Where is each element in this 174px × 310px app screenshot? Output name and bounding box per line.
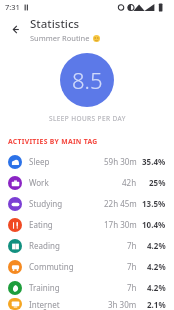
staticText: Studying <box>29 198 63 209</box>
staticText: 8.5 <box>72 65 103 95</box>
button[interactable]: Studying <box>0 193 174 214</box>
staticText: SLEEP HOURS PER DAY <box>49 114 126 123</box>
staticText: 2.1% <box>147 299 166 310</box>
button[interactable]: Commuting <box>0 256 174 277</box>
button[interactable]: Back <box>0 14 30 44</box>
staticText: Work <box>29 177 49 188</box>
staticText: Training <box>29 282 60 293</box>
button[interactable]: Reading <box>0 235 174 256</box>
staticText: 7h <box>127 282 137 293</box>
staticText: Sleep <box>29 156 50 167</box>
staticText: 59h 30m <box>104 156 137 167</box>
staticText: 3h 30m <box>108 299 137 310</box>
button[interactable]: 8.5 <box>60 53 114 107</box>
staticText: 4.2% <box>147 282 166 293</box>
staticText: Eating <box>29 219 53 230</box>
staticText: Commuting <box>29 261 74 272</box>
button[interactable]: Training <box>0 277 174 298</box>
staticText: 4.2% <box>147 240 166 251</box>
staticText: 10.4% <box>142 219 166 230</box>
button[interactable]: Sleep <box>0 151 174 172</box>
staticText: 35.4% <box>142 156 166 167</box>
button[interactable]: Internet <box>0 298 174 310</box>
button[interactable]: Work <box>0 172 174 193</box>
staticText: 4.2% <box>147 261 166 272</box>
staticText: Internet <box>29 299 60 310</box>
staticText: 7:31 <box>5 2 20 12</box>
staticText: ACTIVITIES BY MAIN TAG <box>8 137 98 146</box>
staticText: Summer Routine <box>30 33 90 43</box>
button[interactable]: Eating <box>0 214 174 235</box>
staticText: 22h 45m <box>104 198 137 209</box>
staticText: Reading <box>29 240 60 251</box>
staticText: 25% <box>149 177 166 188</box>
staticText: 7h <box>127 261 137 272</box>
staticText: 17h 30m <box>104 219 137 230</box>
staticText: 13.5% <box>142 198 166 209</box>
staticText: Statistics <box>30 16 80 32</box>
staticText: 7h <box>127 240 137 251</box>
staticText: 42h <box>122 177 137 188</box>
